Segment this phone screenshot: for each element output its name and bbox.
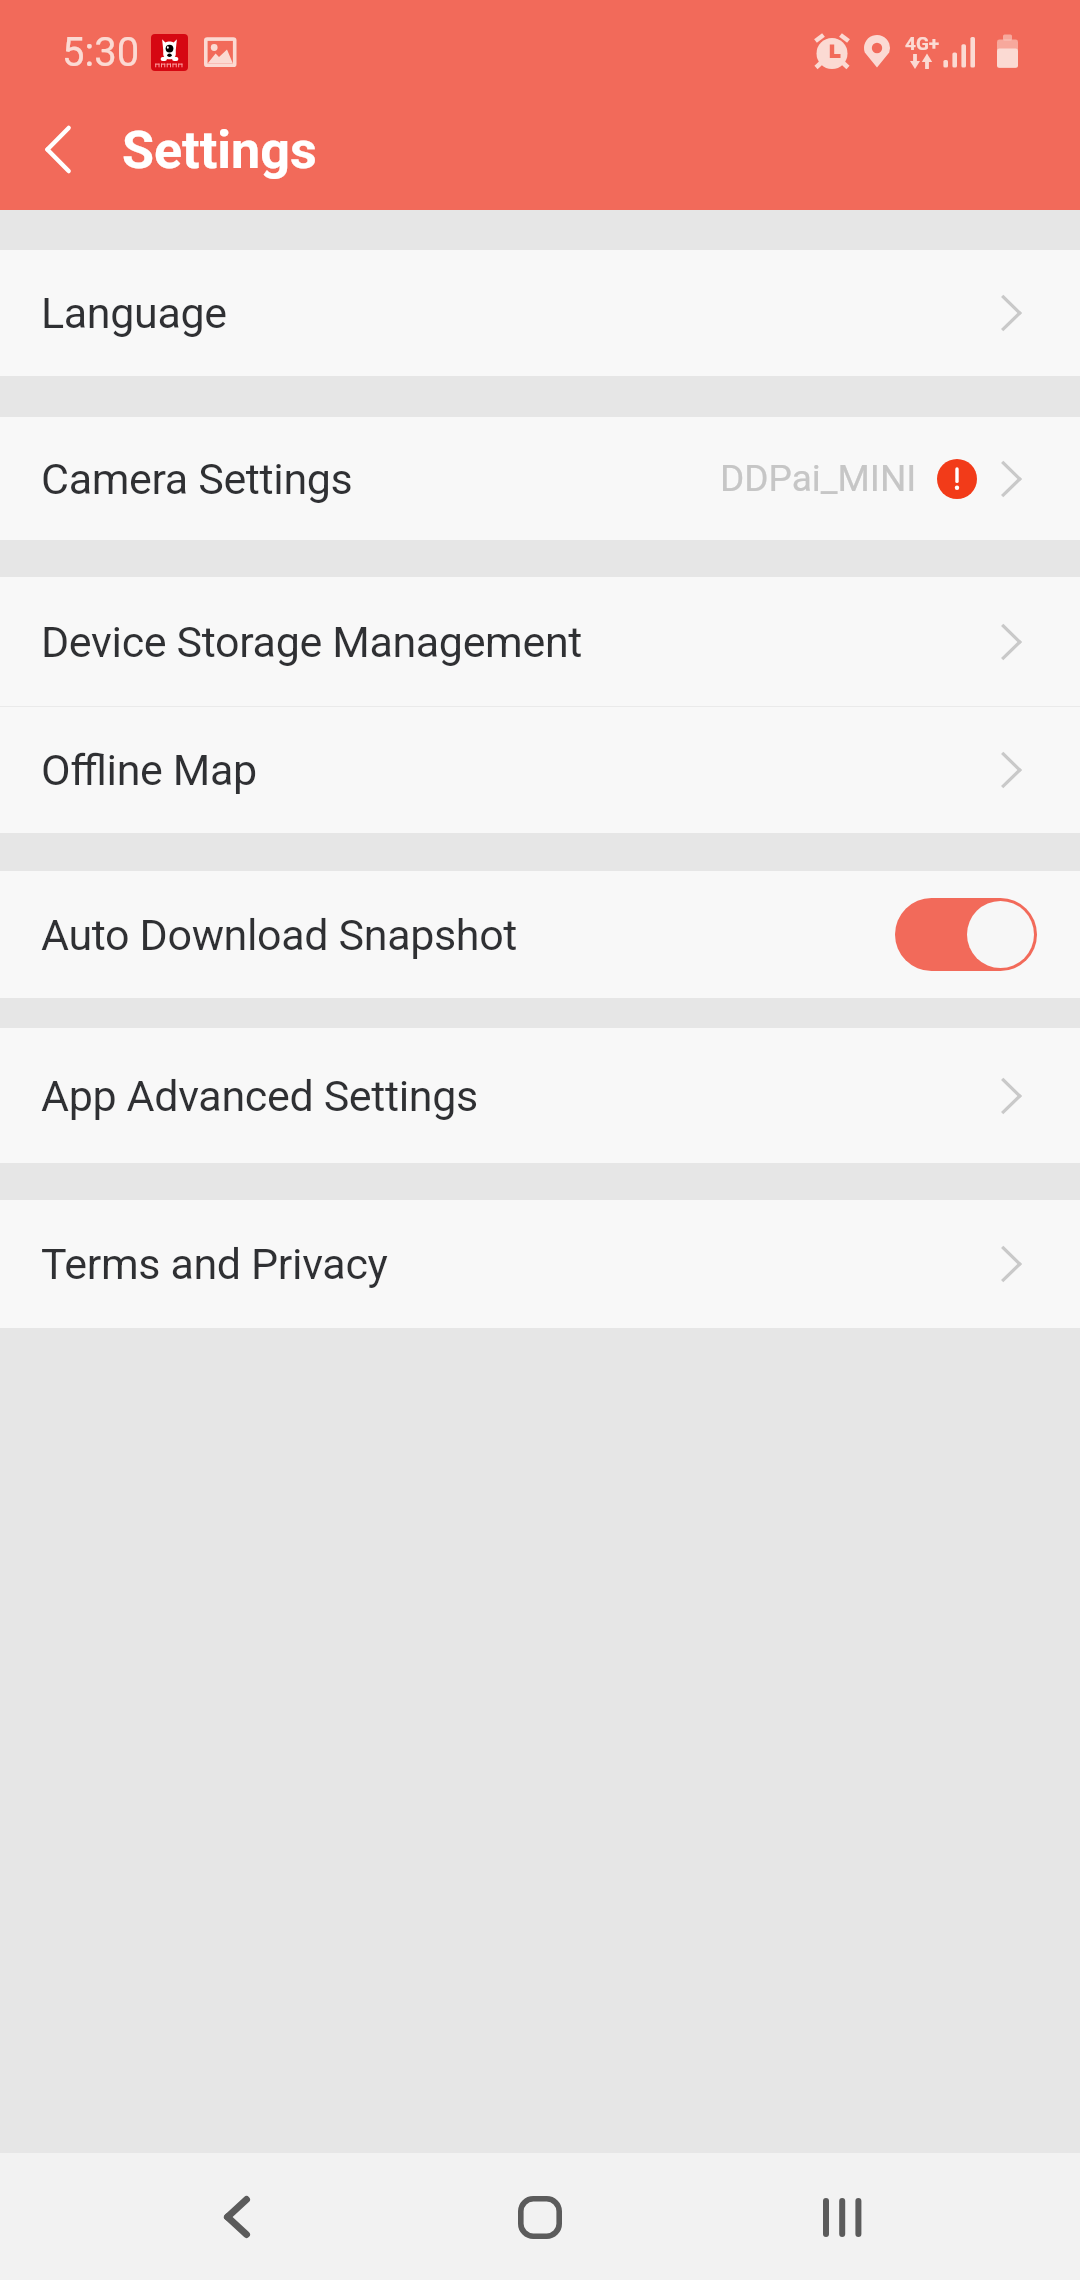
button[interactable]: Recent apps: [806, 2196, 878, 2238]
staticText: DDPai_MINI: [720, 457, 917, 500]
staticText: Device Storage Management: [41, 617, 583, 667]
staticText: 5:30: [62, 29, 140, 76]
button[interactable]: Auto Download Snapshot: [0, 871, 1080, 998]
staticText: 4G+: [905, 32, 940, 54]
button[interactable]: Offline Map: [0, 707, 1080, 833]
staticText: Terms and Privacy: [41, 1239, 388, 1289]
button[interactable]: Terms and Privacy: [0, 1200, 1080, 1328]
button[interactable]: Language: [0, 250, 1080, 376]
staticText: Auto Download Snapshot: [41, 910, 518, 960]
staticText: Language: [41, 288, 227, 338]
staticText: App Advanced Settings: [41, 1071, 478, 1121]
button[interactable]: Back: [25, 117, 91, 183]
staticText: Camera Settings: [41, 454, 353, 504]
button[interactable]: Back: [201, 2196, 273, 2238]
button[interactable]: Camera Settings: [0, 417, 1080, 540]
staticText: Settings: [122, 120, 317, 181]
button[interactable]: Home: [504, 2194, 576, 2240]
button[interactable]: App Advanced Settings: [0, 1028, 1080, 1163]
button[interactable]: Auto Download Snapshot toggle: [895, 898, 1037, 971]
staticText: Offline Map: [41, 745, 257, 795]
button[interactable]: Device Storage Management: [0, 577, 1080, 706]
